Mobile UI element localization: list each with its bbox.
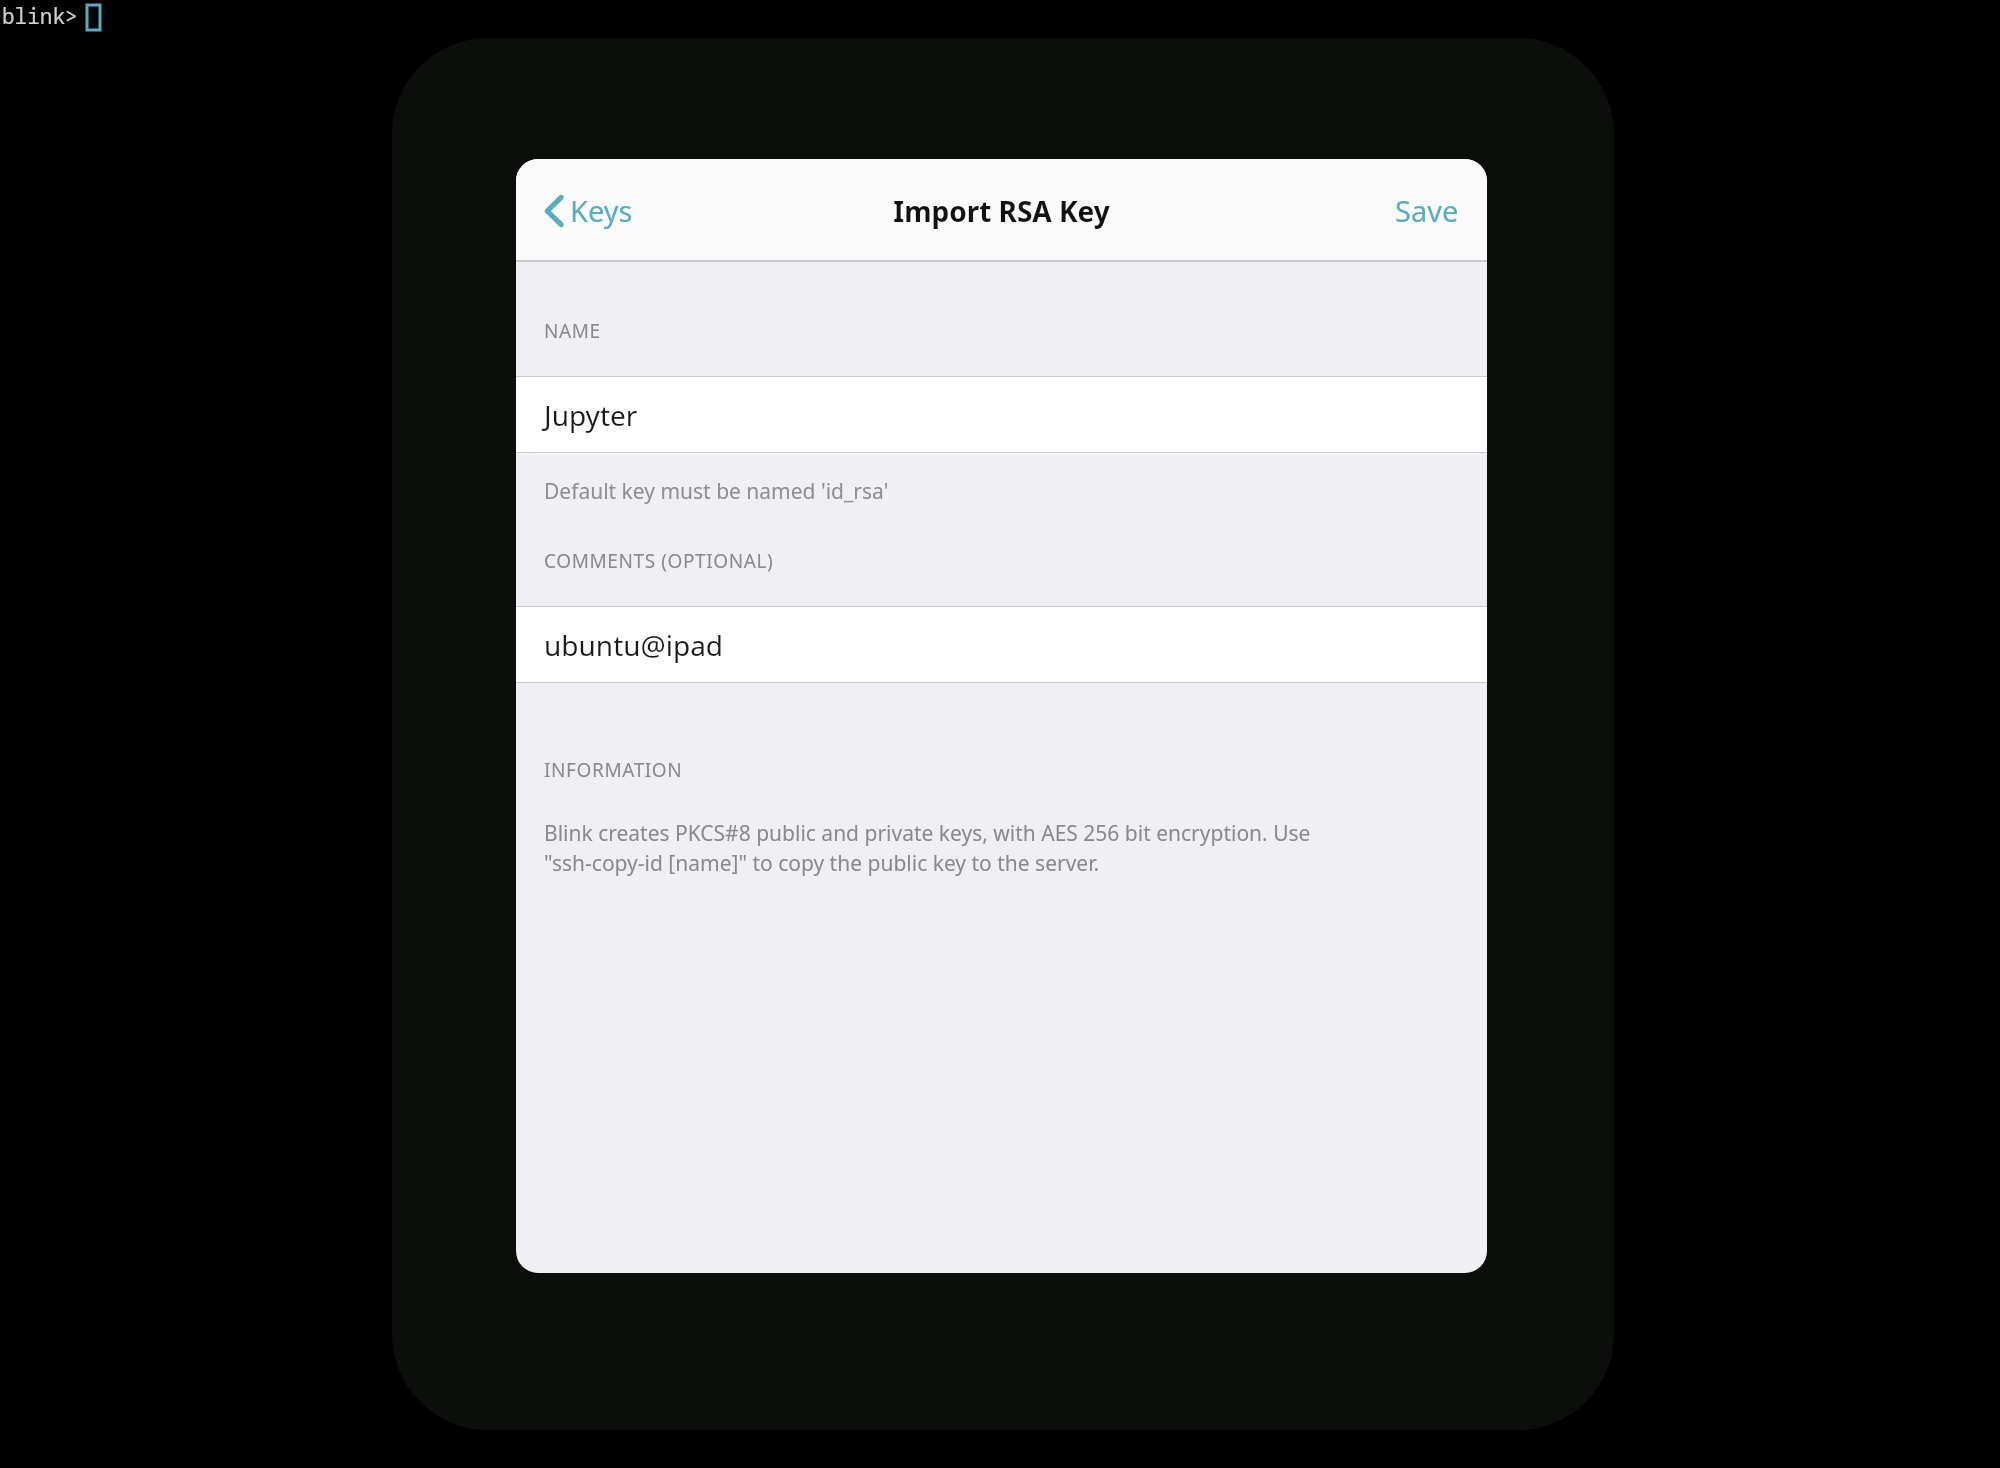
button[interactable]: Keys xyxy=(538,183,639,238)
staticText: NAME xyxy=(544,318,601,344)
staticText: Blink creates PKCS#8 public and private … xyxy=(544,819,1311,877)
button[interactable]: Save xyxy=(1389,183,1465,238)
button[interactable]: Jupyter xyxy=(516,376,1487,453)
staticText: INFORMATION xyxy=(544,757,683,783)
button[interactable]: ubuntu@ipad xyxy=(516,606,1487,683)
staticText: COMMENTS (OPTIONAL) xyxy=(544,548,774,574)
staticText: Save xyxy=(1395,191,1459,230)
staticText: Jupyter xyxy=(544,396,638,434)
staticText: Keys xyxy=(570,191,633,230)
staticText: ubuntu@ipad xyxy=(544,626,724,664)
staticText: Import RSA Key xyxy=(893,192,1110,230)
staticText: Default key must be named 'id_rsa' xyxy=(544,477,889,506)
staticText: blink> xyxy=(2,2,78,31)
